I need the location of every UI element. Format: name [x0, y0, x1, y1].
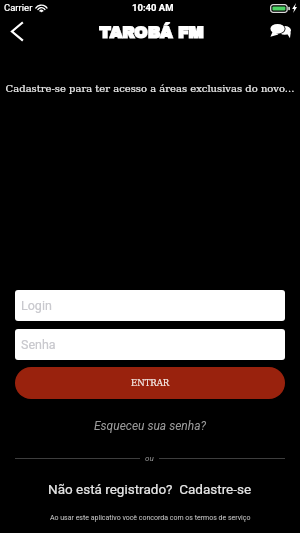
staticText: Senha	[21, 337, 56, 352]
button[interactable]: Senha	[15, 329, 285, 360]
staticText: Carrier	[4, 2, 33, 13]
button[interactable]: Chat	[262, 12, 298, 48]
staticText: 10:40 AM	[132, 2, 174, 13]
staticText: ENTRAR	[131, 378, 170, 388]
staticText: Cadastre-se para ter acesso a áreas excl…	[0, 83, 300, 95]
button[interactable]: Não está registrado? Cadastre-se	[42, 480, 258, 498]
button[interactable]: Back	[0, 14, 34, 48]
staticText: Esqueceu sua senha?	[94, 419, 207, 433]
button[interactable]: Login	[15, 290, 285, 321]
staticText: ou	[145, 454, 154, 463]
staticText: Ao usar este aplicativo você concorda co…	[50, 514, 251, 522]
staticText: Não está registrado? Cadastre-se	[48, 481, 252, 497]
staticText: Login	[21, 298, 52, 313]
staticText: TAROBÁ FM	[99, 24, 204, 41]
button[interactable]: Esqueceu sua senha?	[88, 417, 213, 435]
button[interactable]: ENTRAR	[15, 367, 285, 399]
